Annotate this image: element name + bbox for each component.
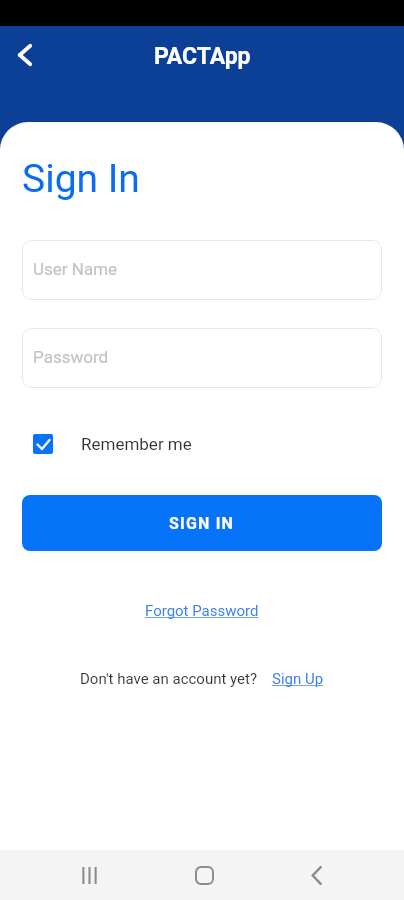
button[interactable]: Recent apps <box>66 852 112 898</box>
button[interactable]: Sign Up <box>272 670 324 688</box>
staticText: SIGN IN <box>169 514 235 533</box>
button[interactable]: Home <box>181 852 227 898</box>
staticText: Don't have an account yet? <box>80 670 258 688</box>
staticText: Sign In <box>22 156 140 202</box>
staticText: Remember me <box>81 434 192 454</box>
button[interactable]: Password <box>22 328 382 388</box>
button[interactable]: Forgot Password <box>145 602 259 620</box>
staticText: Password <box>33 347 109 367</box>
button[interactable]: User Name <box>22 240 382 300</box>
button[interactable]: Back <box>5 35 45 75</box>
staticText: User Name <box>33 259 118 279</box>
button[interactable]: Remember me <box>22 428 192 459</box>
button[interactable]: Back <box>293 852 339 898</box>
button[interactable]: SIGN IN <box>22 495 382 551</box>
staticText: PACTApp <box>154 43 251 70</box>
